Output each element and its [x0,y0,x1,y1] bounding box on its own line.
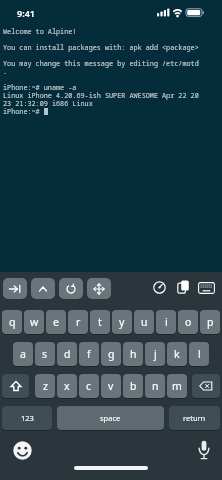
button[interactable]: s [35,342,55,366]
button[interactable]: t [90,310,110,334]
button[interactable]: v [101,374,121,398]
button[interactable]: y [112,310,132,334]
button[interactable] [12,440,33,461]
button[interactable]: space [57,406,164,430]
button[interactable] [3,278,27,299]
staticText: j [154,347,157,361]
button[interactable]: n [145,374,165,398]
staticText: c [86,379,92,393]
staticText: d [64,347,71,361]
staticText: You may change this message by editing /… [3,59,199,68]
button[interactable]: x [57,374,77,398]
button[interactable] [152,280,167,295]
button[interactable]: z [35,374,55,398]
button[interactable] [176,279,191,295]
staticText: n [152,379,159,393]
staticText: return [183,413,206,423]
staticText: s [42,347,48,361]
button[interactable]: l [189,342,209,366]
staticText: p [207,315,214,329]
staticText: e [53,315,59,329]
button[interactable]: 123 [2,406,52,430]
staticText: i [165,315,168,329]
staticText: m [172,379,182,393]
staticText: 123 [21,413,34,423]
button[interactable] [2,374,29,398]
button[interactable] [59,278,83,299]
button[interactable]: f [79,342,99,366]
staticText: b [130,379,137,393]
staticText: t [98,315,102,329]
button[interactable]: h [123,342,143,366]
button[interactable]: c [79,374,99,398]
staticText: 23 21:32:09 i686 Linux [3,99,93,108]
staticText: k [174,347,180,361]
staticText: 9:41 [17,7,35,19]
staticText: iPhone:~# [3,107,44,116]
staticText: f [87,347,91,361]
staticText: iPhone:~# uname -a [3,83,77,92]
staticText: You can install packages with: apk add <… [3,43,199,52]
button[interactable]: g [101,342,121,366]
staticText: z [43,379,48,393]
button[interactable]: return [169,406,220,430]
staticText: o [185,315,192,329]
staticText: w [30,315,39,329]
button[interactable]: q [2,310,22,334]
staticText: space [100,413,121,423]
staticText: u [141,315,148,329]
staticText: g [108,347,115,361]
staticText: . [3,67,8,76]
button[interactable]: p [200,310,220,334]
staticText: y [119,315,125,329]
button[interactable]: e [46,310,66,334]
button[interactable]: o [178,310,198,334]
staticText: x [64,379,70,393]
staticText: l [198,347,201,361]
button[interactable] [31,278,55,299]
button[interactable]: b [123,374,143,398]
button[interactable] [197,281,216,295]
staticText: q [9,315,16,329]
button[interactable]: a [13,342,33,366]
button[interactable]: r [68,310,88,334]
staticText: Welcome to Alpine! [3,27,77,36]
button[interactable]: u [134,310,154,334]
button[interactable] [196,438,212,462]
staticText: r [76,315,81,329]
button[interactable]: d [57,342,77,366]
staticText: v [108,379,114,393]
button[interactable]: m [167,374,187,398]
button[interactable]: k [167,342,187,366]
button[interactable] [192,374,220,398]
staticText: Linux iPhone 4.20.69-ish SUPER AWESOME A… [3,91,199,100]
button[interactable]: i [156,310,176,334]
button[interactable]: j [145,342,165,366]
button[interactable] [87,278,111,299]
staticText: h [130,347,137,361]
button[interactable]: w [24,310,44,334]
staticText: a [20,347,26,361]
